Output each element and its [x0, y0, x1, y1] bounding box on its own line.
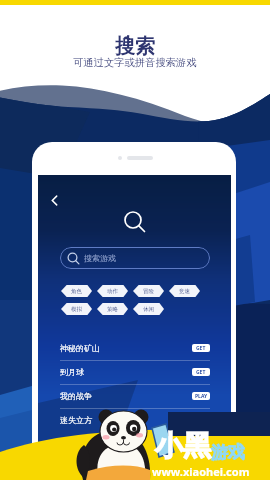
button[interactable]: PLAY	[192, 392, 210, 400]
staticText: 我的战争	[60, 391, 92, 401]
button[interactable]: 策略	[97, 303, 128, 315]
button[interactable]: 模拟	[61, 303, 92, 315]
button[interactable]: GET	[192, 344, 210, 352]
staticText: 可通过文字或拼音搜索游戏	[73, 56, 197, 69]
button[interactable]: GET	[192, 368, 210, 376]
staticText: 迷失立方	[60, 415, 92, 425]
staticText: 小黑	[155, 428, 211, 463]
staticText: 策略	[107, 306, 118, 313]
button[interactable]: 神秘的矿山	[60, 337, 210, 359]
button[interactable]: Back	[46, 192, 62, 208]
staticText: www.xiaohei.com	[152, 464, 250, 479]
button[interactable]: 动作	[97, 285, 128, 297]
button[interactable]: 搜索游戏	[60, 247, 210, 269]
button[interactable]: 我的战争	[60, 385, 210, 407]
staticText: 休闲	[143, 306, 154, 313]
staticText: 竞速	[179, 288, 190, 295]
staticText: GET	[196, 345, 206, 352]
button[interactable]: 冒险	[133, 285, 164, 297]
button[interactable]: 角色	[61, 285, 92, 297]
staticText: 模拟	[71, 306, 82, 313]
staticText: 搜索	[115, 34, 155, 59]
staticText: 到月球	[60, 367, 84, 377]
button[interactable]: 竞速	[169, 285, 200, 297]
staticText: 角色	[71, 288, 82, 295]
button[interactable]: 到月球	[60, 361, 210, 383]
button[interactable]: 休闲	[133, 303, 164, 315]
staticText: 动作	[107, 288, 118, 295]
button[interactable]: 迷失立方	[60, 409, 210, 431]
staticText: GET	[196, 369, 206, 376]
staticText: PLAY	[195, 393, 208, 400]
staticText: 神秘的矿山	[60, 343, 100, 353]
staticText: 搜索游戏	[84, 253, 116, 263]
staticText: 冒险	[143, 288, 154, 295]
staticText: 游戏	[211, 442, 245, 463]
